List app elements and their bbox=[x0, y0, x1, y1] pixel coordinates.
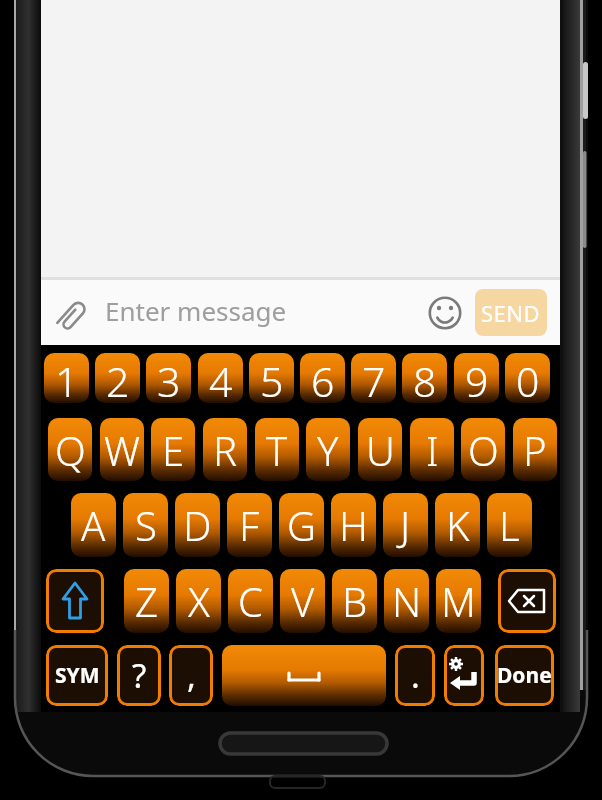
staticText: N bbox=[392, 574, 422, 628]
staticText: B bbox=[342, 574, 368, 628]
staticText: 3 bbox=[157, 353, 181, 403]
button[interactable]: A bbox=[71, 493, 116, 557]
staticText: V bbox=[291, 574, 315, 628]
staticText: 7 bbox=[362, 353, 386, 403]
staticText: A bbox=[81, 498, 106, 552]
staticText: 1 bbox=[55, 353, 79, 403]
staticText: E bbox=[162, 423, 185, 477]
button[interactable]: R bbox=[203, 418, 247, 481]
button[interactable]: V bbox=[280, 569, 325, 633]
button[interactable]: SYM bbox=[46, 645, 108, 706]
button[interactable]: O bbox=[461, 418, 505, 481]
staticText: L bbox=[499, 498, 520, 552]
button[interactable]: Q bbox=[48, 418, 92, 481]
button[interactable] bbox=[444, 645, 484, 706]
staticText: D bbox=[183, 498, 212, 552]
button[interactable]: 6 bbox=[300, 353, 345, 403]
staticText: I bbox=[426, 423, 439, 477]
staticText: ? bbox=[132, 653, 147, 698]
staticText: SEND bbox=[481, 298, 541, 328]
button[interactable] bbox=[41, 280, 560, 345]
button[interactable]: 2 bbox=[95, 353, 140, 403]
button[interactable]: 8 bbox=[402, 353, 447, 403]
staticText: 9 bbox=[465, 353, 489, 403]
staticText: Done bbox=[497, 661, 552, 690]
button[interactable]: G bbox=[279, 493, 324, 557]
button[interactable]: C bbox=[228, 569, 273, 633]
button[interactable]: 3 bbox=[146, 353, 191, 403]
button[interactable]: Done bbox=[495, 645, 554, 706]
staticText: U bbox=[366, 423, 395, 477]
staticText: 8 bbox=[413, 353, 437, 403]
button[interactable]: X bbox=[176, 569, 221, 633]
staticText: T bbox=[266, 423, 288, 477]
button[interactable]: N bbox=[384, 569, 429, 633]
button[interactable] bbox=[46, 569, 104, 633]
button[interactable]: P bbox=[513, 418, 557, 481]
button[interactable]: 5 bbox=[249, 353, 294, 403]
staticText: Enter message bbox=[105, 293, 287, 328]
staticText: 0 bbox=[516, 353, 540, 403]
button[interactable]: . bbox=[395, 645, 435, 706]
staticText: F bbox=[239, 498, 260, 552]
button[interactable]: D bbox=[175, 493, 220, 557]
button[interactable]: , bbox=[169, 645, 213, 706]
staticText: S bbox=[135, 498, 157, 552]
staticText: 6 bbox=[311, 353, 335, 403]
button[interactable]: ? bbox=[117, 645, 161, 706]
staticText: H bbox=[339, 498, 368, 552]
button[interactable]: 1 bbox=[44, 353, 89, 403]
staticText: 2 bbox=[106, 353, 130, 403]
staticText: M bbox=[441, 574, 476, 628]
button[interactable]: E bbox=[151, 418, 195, 481]
button[interactable]: Z bbox=[124, 569, 169, 633]
staticText: Q bbox=[55, 423, 86, 477]
staticText: X bbox=[188, 574, 210, 628]
staticText: K bbox=[446, 498, 470, 552]
button[interactable]: M bbox=[436, 569, 481, 633]
button[interactable]: 0 bbox=[505, 353, 550, 403]
button[interactable]: K bbox=[435, 493, 480, 557]
staticText: Z bbox=[135, 574, 158, 628]
button[interactable]: J bbox=[383, 493, 428, 557]
button[interactable]: S bbox=[123, 493, 168, 557]
button[interactable]: SEND bbox=[475, 289, 547, 336]
staticText: G bbox=[287, 498, 316, 552]
button[interactable]: 7 bbox=[351, 353, 396, 403]
button[interactable] bbox=[222, 645, 386, 706]
button[interactable]: W bbox=[100, 418, 144, 481]
button[interactable] bbox=[47, 291, 97, 341]
button[interactable] bbox=[498, 569, 556, 633]
staticText: R bbox=[213, 423, 237, 477]
staticText: J bbox=[400, 498, 411, 552]
staticText: . bbox=[411, 653, 420, 698]
staticText: Y bbox=[317, 423, 339, 477]
button[interactable]: T bbox=[255, 418, 299, 481]
staticText: W bbox=[104, 423, 140, 477]
button[interactable]: F bbox=[227, 493, 272, 557]
button[interactable]: B bbox=[332, 569, 377, 633]
button[interactable]: 9 bbox=[454, 353, 499, 403]
button[interactable]: Y bbox=[306, 418, 350, 481]
button[interactable]: I bbox=[410, 418, 454, 481]
button[interactable]: 4 bbox=[198, 353, 243, 403]
staticText: 4 bbox=[209, 353, 233, 403]
staticText: O bbox=[468, 423, 499, 477]
staticText: 5 bbox=[260, 353, 284, 403]
staticText: SYM bbox=[55, 661, 100, 690]
button[interactable]: L bbox=[487, 493, 532, 557]
staticText: , bbox=[187, 653, 196, 698]
staticText: C bbox=[238, 574, 263, 628]
staticText: P bbox=[523, 423, 547, 477]
button[interactable]: U bbox=[358, 418, 402, 481]
button[interactable]: H bbox=[331, 493, 376, 557]
button[interactable] bbox=[427, 295, 463, 331]
